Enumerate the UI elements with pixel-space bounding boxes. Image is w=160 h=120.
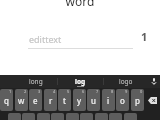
button[interactable]: y [73,89,86,111]
button[interactable]: p [131,89,144,111]
button[interactable]: w [15,89,28,111]
staticText: r [49,95,53,106]
staticText: y [77,95,82,106]
button[interactable]: a [8,113,21,120]
button[interactable]: u [87,89,100,111]
button[interactable]: Backspace [145,88,160,112]
button[interactable]: g [66,113,79,120]
button[interactable]: k [109,113,122,120]
staticText: t [63,95,66,106]
staticText: word [0,0,160,9]
staticText: w [18,95,25,106]
staticText: 5 [67,89,70,94]
staticText: 6 [82,89,85,94]
staticText: long [29,77,43,86]
button[interactable]: d [37,113,50,120]
button[interactable]: h [80,113,93,120]
staticText: 9 [125,89,128,94]
staticText: log [75,77,86,86]
button[interactable]: long [13,75,58,88]
staticText: logo [119,77,133,86]
button[interactable]: log [58,75,103,88]
staticText: o [120,95,125,106]
staticText: edittext [29,33,62,45]
staticText: 2 [24,89,27,94]
button[interactable]: i [102,89,115,111]
staticText: p [135,95,140,106]
button[interactable]: Voice input [148,75,160,88]
staticText: e [33,95,38,106]
staticText: 1 [9,89,12,94]
button[interactable]: f [51,113,64,120]
button[interactable]: logo [103,75,148,88]
button[interactable]: l [124,113,137,120]
button[interactable]: q [0,89,13,111]
staticText: 8 [111,89,114,94]
button[interactable]: t [58,89,71,111]
staticText: 4 [53,89,56,94]
staticText: u [91,95,96,106]
staticText: 1 [141,29,148,44]
button[interactable]: o [116,89,129,111]
staticText: i [107,95,110,106]
button[interactable]: e [29,89,42,111]
staticText: 3 [38,89,41,94]
button[interactable]: r [44,89,57,111]
button[interactable]: s [22,113,35,120]
staticText: q [4,95,9,106]
staticText: 0 [140,89,143,94]
button[interactable]: j [95,113,108,120]
staticText: 7 [96,89,99,94]
